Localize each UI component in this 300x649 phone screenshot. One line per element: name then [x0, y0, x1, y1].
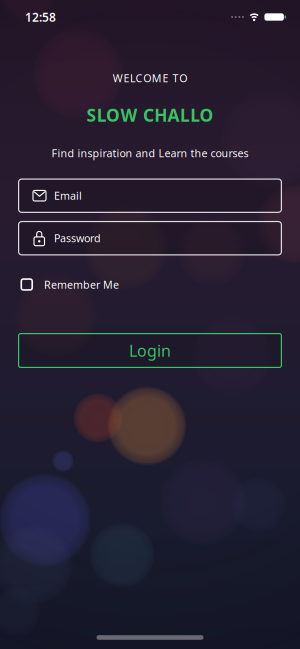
- staticText: WELCOME TO: [113, 71, 187, 85]
- staticText: 12:58: [25, 9, 56, 25]
- staticText: Remember Me: [44, 277, 119, 292]
- staticText: Password: [54, 231, 101, 245]
- button[interactable]: Email: [18, 178, 282, 213]
- staticText: Login: [129, 340, 171, 361]
- staticText: SLOW CHALLO: [86, 103, 213, 126]
- staticText: Find inspiration and Learn the courses: [51, 146, 248, 160]
- button[interactable]: Login: [18, 333, 282, 368]
- button[interactable]: Password: [18, 221, 282, 255]
- staticText: Email: [54, 189, 82, 203]
- button[interactable]: Remember Me: [0, 277, 300, 292]
